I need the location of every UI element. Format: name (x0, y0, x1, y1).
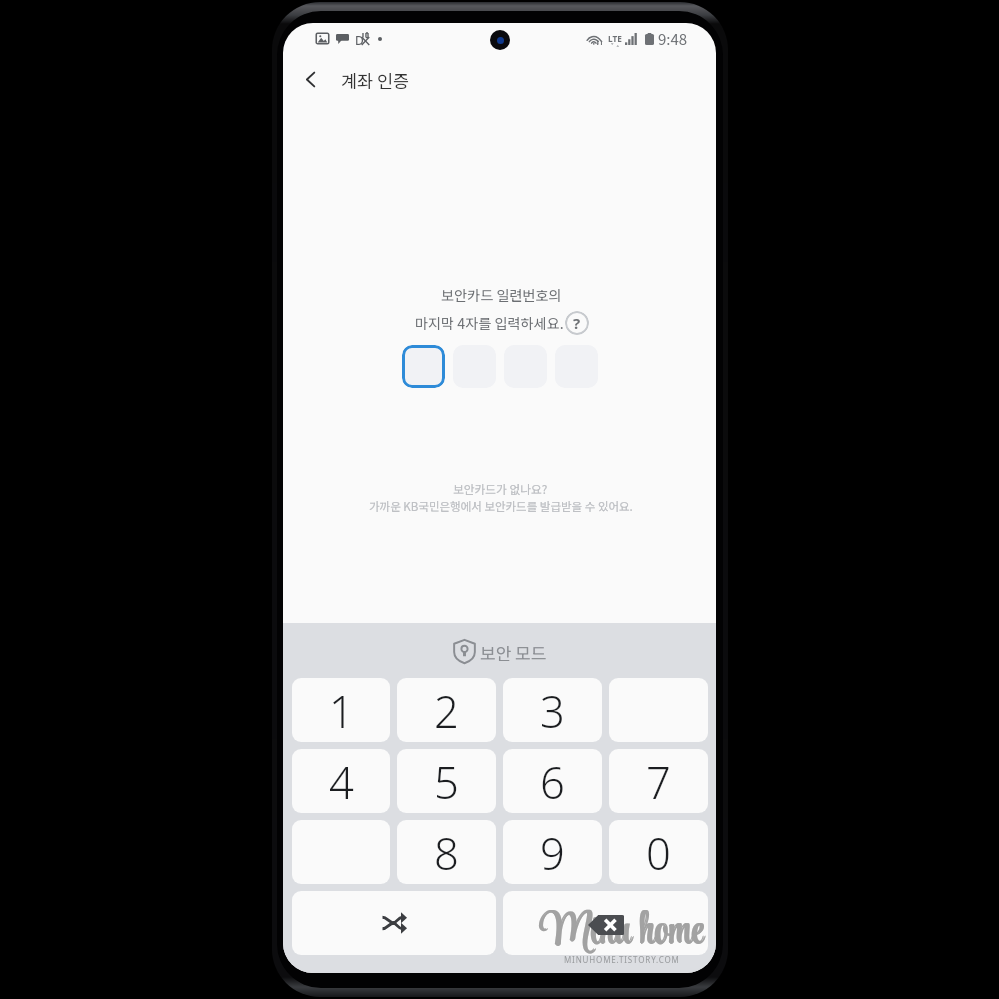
staticText: 보안카드 일련번호의 (441, 285, 562, 306)
button[interactable] (402, 345, 445, 388)
button[interactable]: 8 (397, 820, 496, 884)
staticText: 4 (329, 752, 354, 811)
staticText: 가까운 KB국민은행에서 보안카드를 발급받을 수 있어요. (369, 498, 633, 515)
staticText: 마지막 4자를 입력하세요. (415, 313, 564, 334)
button[interactable]: 6 (503, 749, 602, 813)
button[interactable] (292, 820, 390, 884)
staticText: 7 (646, 752, 671, 811)
button[interactable]: 뒤로 (289, 58, 331, 100)
staticText: 9 (540, 823, 565, 882)
staticText: 보안 모드 (480, 640, 547, 665)
staticText: Minu home (539, 900, 702, 965)
button[interactable]: 3 (503, 678, 602, 742)
button[interactable]: 도움말 (565, 311, 589, 335)
button[interactable]: 7 (609, 749, 708, 813)
staticText: Minu home (540, 901, 703, 966)
staticText: MINUHOME.TISTORY.COM (564, 954, 680, 965)
staticText: 1 (329, 681, 354, 740)
staticText: 6 (540, 752, 565, 811)
button[interactable]: 1 (292, 678, 390, 742)
button[interactable]: 5 (397, 749, 496, 813)
staticText: ? (573, 313, 581, 333)
staticText: 5 (434, 752, 459, 811)
staticText: 8 (434, 823, 459, 882)
staticText: LTE (608, 33, 622, 44)
staticText: 0 (646, 823, 671, 882)
button[interactable]: 0 (609, 820, 708, 884)
button[interactable]: 숫자 섞기 (292, 891, 496, 955)
button[interactable]: 4 (292, 749, 390, 813)
staticText: 계좌 인증 (341, 68, 409, 93)
staticText: 보안카드가 없나요? (453, 480, 548, 497)
button[interactable]: 지우기 (503, 891, 708, 955)
staticText: 9:48 (658, 28, 688, 50)
button[interactable] (609, 678, 708, 742)
button[interactable]: 9 (503, 820, 602, 884)
button[interactable]: 2 (397, 678, 496, 742)
staticText: Minu home (541, 900, 704, 965)
staticText: 3 (540, 681, 565, 740)
staticText: D (355, 32, 364, 45)
staticText: 2 (434, 681, 459, 740)
